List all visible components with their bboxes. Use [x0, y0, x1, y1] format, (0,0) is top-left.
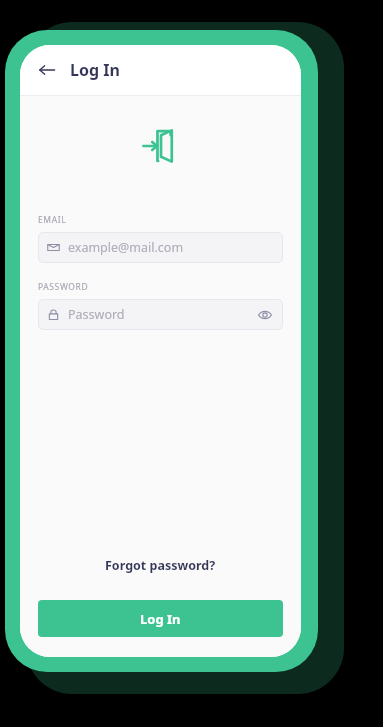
button[interactable]: Show password [256, 306, 274, 324]
staticText: example@mail.com [68, 239, 184, 256]
button[interactable]: Log In [38, 600, 283, 637]
staticText: PASSWORD [38, 281, 89, 293]
button[interactable]: Back [32, 55, 62, 85]
staticText: Forgot password? [105, 557, 216, 574]
button[interactable]: Forgot password? [99, 553, 222, 578]
staticText: Password [68, 306, 125, 323]
button[interactable]: Password [38, 299, 283, 330]
staticText: Log In [70, 59, 120, 81]
staticText: EMAIL [38, 214, 67, 226]
button[interactable]: example@mail.com [38, 232, 283, 263]
staticText: Log In [140, 610, 181, 628]
